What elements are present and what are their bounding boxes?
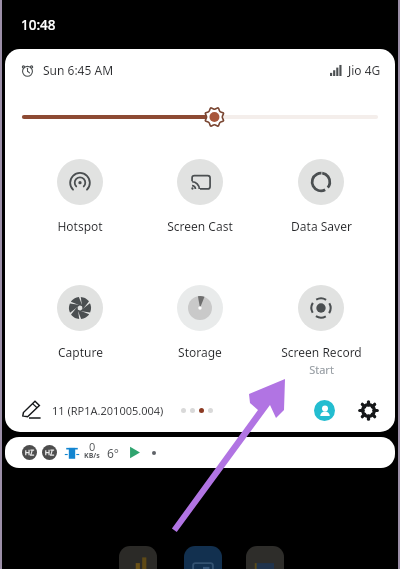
- button[interactable]: Settings: [359, 401, 378, 420]
- staticText: Screen Record: [281, 344, 362, 360]
- staticText: Sun 6:45 AM: [43, 62, 114, 78]
- staticText: Capture: [58, 344, 103, 360]
- button[interactable]: Screen Record: [261, 285, 381, 377]
- staticText: Data Saver: [291, 218, 352, 234]
- staticText: Screen Cast: [167, 218, 233, 234]
- staticText: KB/s: [84, 451, 100, 461]
- button[interactable]: Screen Cast: [140, 159, 260, 234]
- staticText: Hotspot: [57, 218, 103, 234]
- button[interactable]: Charts app: [119, 546, 157, 569]
- button[interactable]: Hotspot: [20, 159, 140, 234]
- staticText: Storage: [178, 344, 222, 360]
- button[interactable]: Edit: [21, 400, 41, 420]
- staticText: 10:48: [21, 16, 56, 34]
- staticText: 6°: [107, 445, 120, 461]
- staticText: Jio 4G: [348, 62, 381, 78]
- staticText: 0: [89, 439, 96, 454]
- button[interactable]: Capture: [20, 285, 140, 360]
- staticText: 11 (RP1A.201005.004): [52, 403, 164, 418]
- button[interactable]: [5, 100, 395, 134]
- button[interactable]: Storage: [140, 285, 260, 360]
- button[interactable]: User account: [314, 400, 335, 421]
- button[interactable]: Data Saver: [261, 159, 381, 234]
- staticText: Start: [309, 362, 334, 377]
- button[interactable]: Dictionary app: [246, 546, 284, 569]
- button[interactable]: Photos app: [184, 546, 222, 569]
